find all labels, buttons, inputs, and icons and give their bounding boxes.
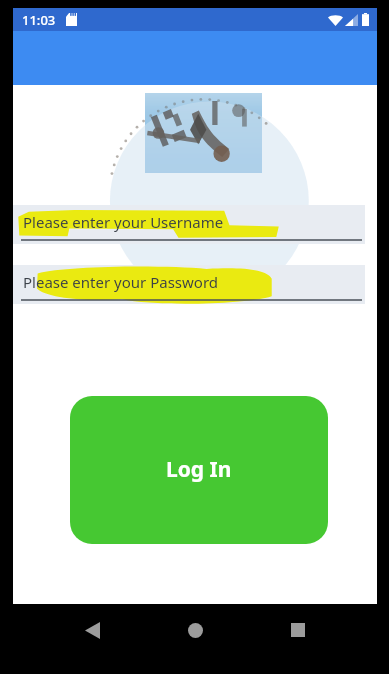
button[interactable]: Recent apps bbox=[274, 606, 322, 654]
staticText: Please enter your Password bbox=[23, 272, 219, 292]
button[interactable]: Please enter your Password bbox=[13, 265, 365, 304]
button[interactable]: Please enter your Username bbox=[13, 205, 365, 244]
button[interactable]: Back bbox=[68, 606, 116, 654]
staticText: Please enter your Username bbox=[23, 212, 224, 232]
button[interactable]: Log In bbox=[70, 396, 328, 544]
button[interactable]: Home bbox=[171, 606, 219, 654]
staticText: Log In bbox=[166, 455, 232, 484]
staticText: 11:03 bbox=[22, 11, 56, 29]
